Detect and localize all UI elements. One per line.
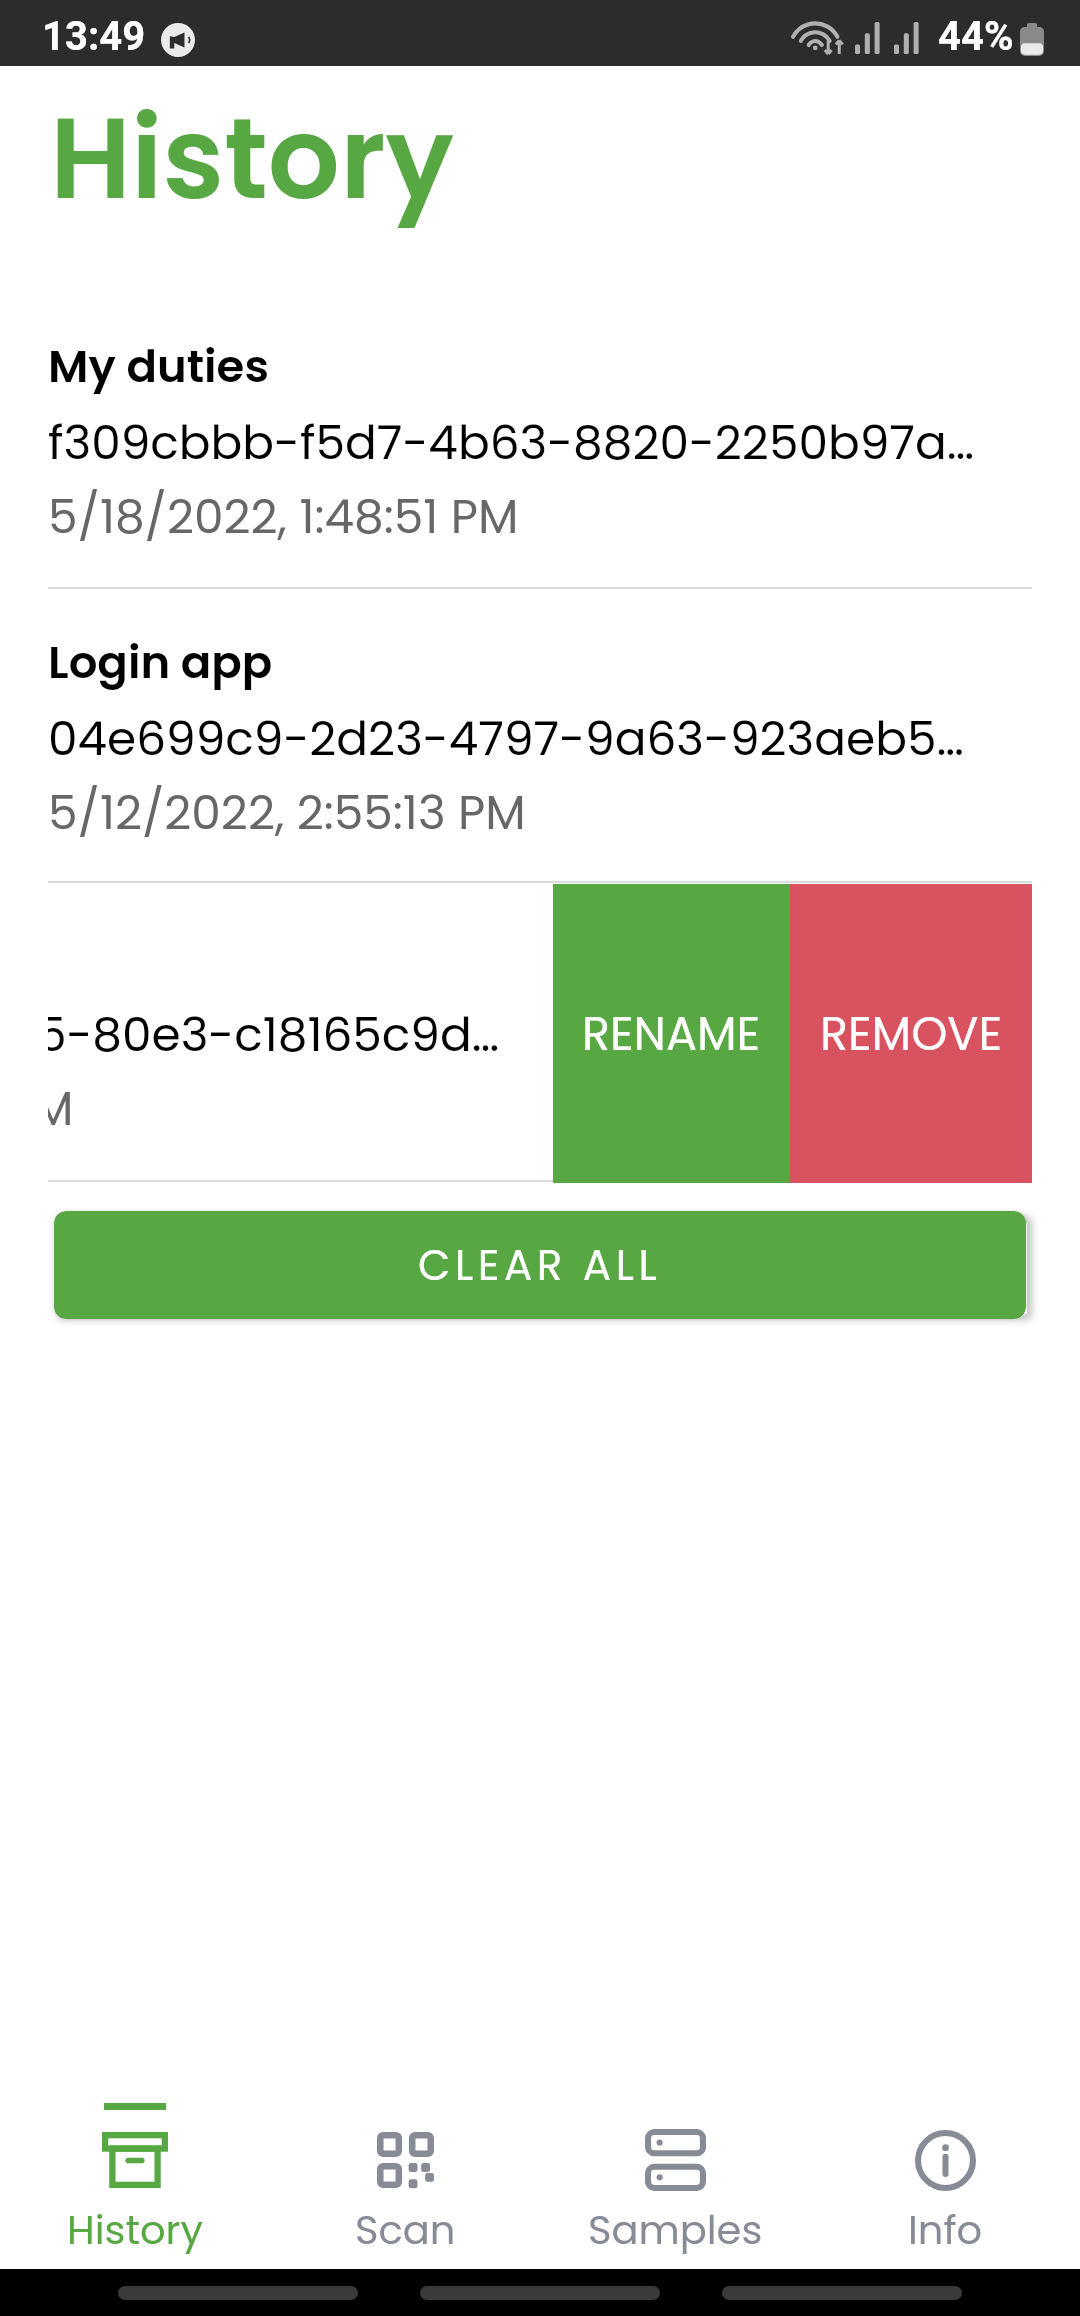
button[interactable]: Samples [540,2065,810,2269]
button[interactable]: RENAME [553,884,790,1183]
staticText: History [50,79,454,237]
button[interactable]: Scan [270,2065,540,2269]
staticText: 4b9c12f0-7a3e-4d5-80e3-c18165c9d0a7 [48,1002,503,1068]
button[interactable] [0,884,1080,1180]
button[interactable]: Info [810,2065,1080,2269]
staticText: f309cbbb-f5d7-4b63-8820-2250b97ae8a1 [48,410,975,476]
staticText: History [67,2202,203,2258]
staticText: CLEAR ALL [418,1236,662,1295]
button[interactable]: CLEAR ALL [54,1211,1026,1319]
staticText: 5/18/2022, 1:48:51 PM [48,484,519,550]
staticText: 5/18/2022, 1:48:51 PM [48,1076,74,1142]
staticText: 5/12/2022, 2:55:13 PM [48,780,526,846]
staticText: RENAME [582,1002,761,1066]
button[interactable] [0,291,1080,587]
staticText: Scan [355,2202,456,2258]
button[interactable]: REMOVE [790,884,1032,1183]
staticText: Login app [48,631,273,694]
staticText: Info [908,2202,983,2258]
staticText: REMOVE [820,1002,1003,1066]
staticText: My duties [48,335,269,398]
button[interactable] [0,587,1080,883]
staticText: 04e699c9-2d23-4797-9a63-923aeb5f12c8 [48,706,975,772]
staticText: 13:49 [42,13,146,60]
button[interactable]: History [0,2065,270,2269]
staticText: Samples [588,2202,763,2258]
staticText: 44% [938,13,1014,60]
